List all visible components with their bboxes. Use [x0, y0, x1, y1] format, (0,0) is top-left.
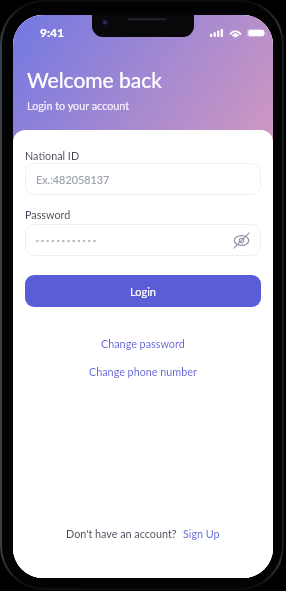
- button[interactable]: Show password: [233, 232, 250, 249]
- button[interactable]: Login: [25, 275, 261, 307]
- staticText: Welcome back: [27, 67, 162, 92]
- staticText: Sign Up: [183, 527, 220, 540]
- button[interactable]: Show password: [25, 224, 261, 256]
- button[interactable]: Ex.:482058137: [25, 163, 261, 195]
- staticText: Login: [130, 285, 156, 298]
- button[interactable]: Sign Up: [183, 527, 220, 540]
- staticText: Change password: [101, 337, 185, 350]
- staticText: Password: [25, 208, 71, 221]
- staticText: Login to your account: [27, 99, 130, 112]
- button[interactable]: Change password: [25, 335, 261, 352]
- staticText: Change phone number: [89, 365, 197, 378]
- staticText: Ex.:482058137: [36, 173, 110, 186]
- staticText: 9:41: [40, 25, 64, 39]
- staticText: Don't have an account?: [66, 527, 177, 540]
- button[interactable]: Change phone number: [25, 363, 261, 380]
- staticText: National ID: [25, 149, 80, 162]
